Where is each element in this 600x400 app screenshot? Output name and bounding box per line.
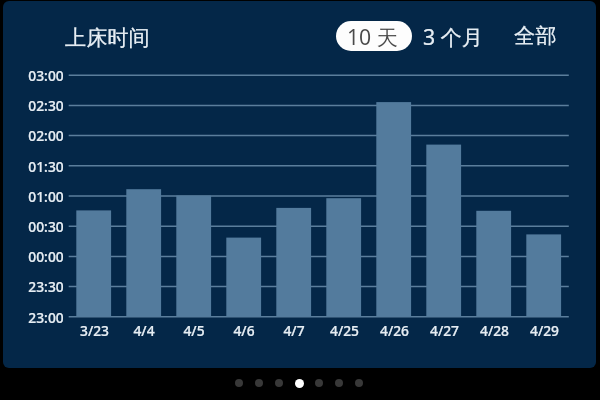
staticText: 上床时间 [65, 25, 150, 52]
button[interactable]: 4/5 [172, 321, 216, 340]
button[interactable]: 3/23 [72, 321, 116, 340]
staticText: 3/23 [80, 321, 109, 340]
staticText: 02:30 [28, 96, 64, 115]
staticText: 03:00 [28, 66, 64, 85]
staticText: 4/29 [530, 321, 559, 340]
button[interactable]: Page 3 [270, 374, 288, 392]
button[interactable]: 4/27 [422, 321, 466, 340]
staticText: 4/28 [480, 321, 509, 340]
staticText: 4/4 [133, 321, 155, 340]
button[interactable]: 4/4 [122, 321, 166, 340]
staticText: 10 天 [347, 22, 398, 51]
staticText: 00:00 [28, 247, 64, 266]
staticText: 4/27 [430, 321, 459, 340]
staticText: 4/6 [233, 321, 255, 340]
staticText: 4/25 [330, 321, 359, 340]
staticText: 23:30 [28, 277, 64, 296]
button[interactable]: Page 2 [250, 374, 268, 392]
staticText: 01:30 [28, 157, 64, 176]
staticText: 3 个月 [423, 22, 484, 51]
staticText: 4/26 [380, 321, 409, 340]
button[interactable]: 4/6 [222, 321, 266, 340]
button[interactable]: 4/28 [472, 321, 516, 340]
staticText: 01:00 [28, 187, 64, 206]
staticText: 02:00 [28, 126, 64, 145]
button[interactable]: 4/26 [372, 321, 416, 340]
staticText: 4/7 [283, 321, 305, 340]
staticText: 4/5 [183, 321, 205, 340]
button[interactable]: Page 4 [290, 374, 308, 392]
button[interactable]: Page 7 [350, 374, 368, 392]
button[interactable]: 3 个月 [421, 21, 486, 51]
button[interactable]: 4/25 [322, 321, 366, 340]
button[interactable]: 4/7 [272, 321, 316, 340]
staticText: 00:30 [28, 217, 64, 236]
button[interactable]: Page 1 [230, 374, 248, 392]
button[interactable]: Page 5 [310, 374, 328, 392]
button[interactable]: 10 天 [336, 21, 412, 51]
staticText: 全部 [514, 23, 557, 50]
button[interactable]: 4/29 [522, 321, 566, 340]
staticText: 23:00 [28, 308, 64, 327]
button[interactable]: 全部 [512, 21, 559, 51]
button[interactable]: Page 6 [330, 374, 348, 392]
